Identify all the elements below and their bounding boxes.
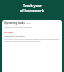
staticText: Lorem ipsum dolor sit amet consectetur a… bbox=[4, 38, 60, 42]
staticText: Due today bbox=[4, 31, 14, 33]
staticText: Mathematics homework bbox=[4, 35, 25, 37]
staticText: Lorem ipsum dolor sit amet consectetur bbox=[4, 26, 33, 28]
staticText: of homework bbox=[20, 8, 44, 13]
button[interactable]: See all bbox=[26, 22, 31, 24]
staticText: Track your bbox=[23, 3, 42, 8]
staticText: Upcoming tasks bbox=[4, 21, 25, 25]
